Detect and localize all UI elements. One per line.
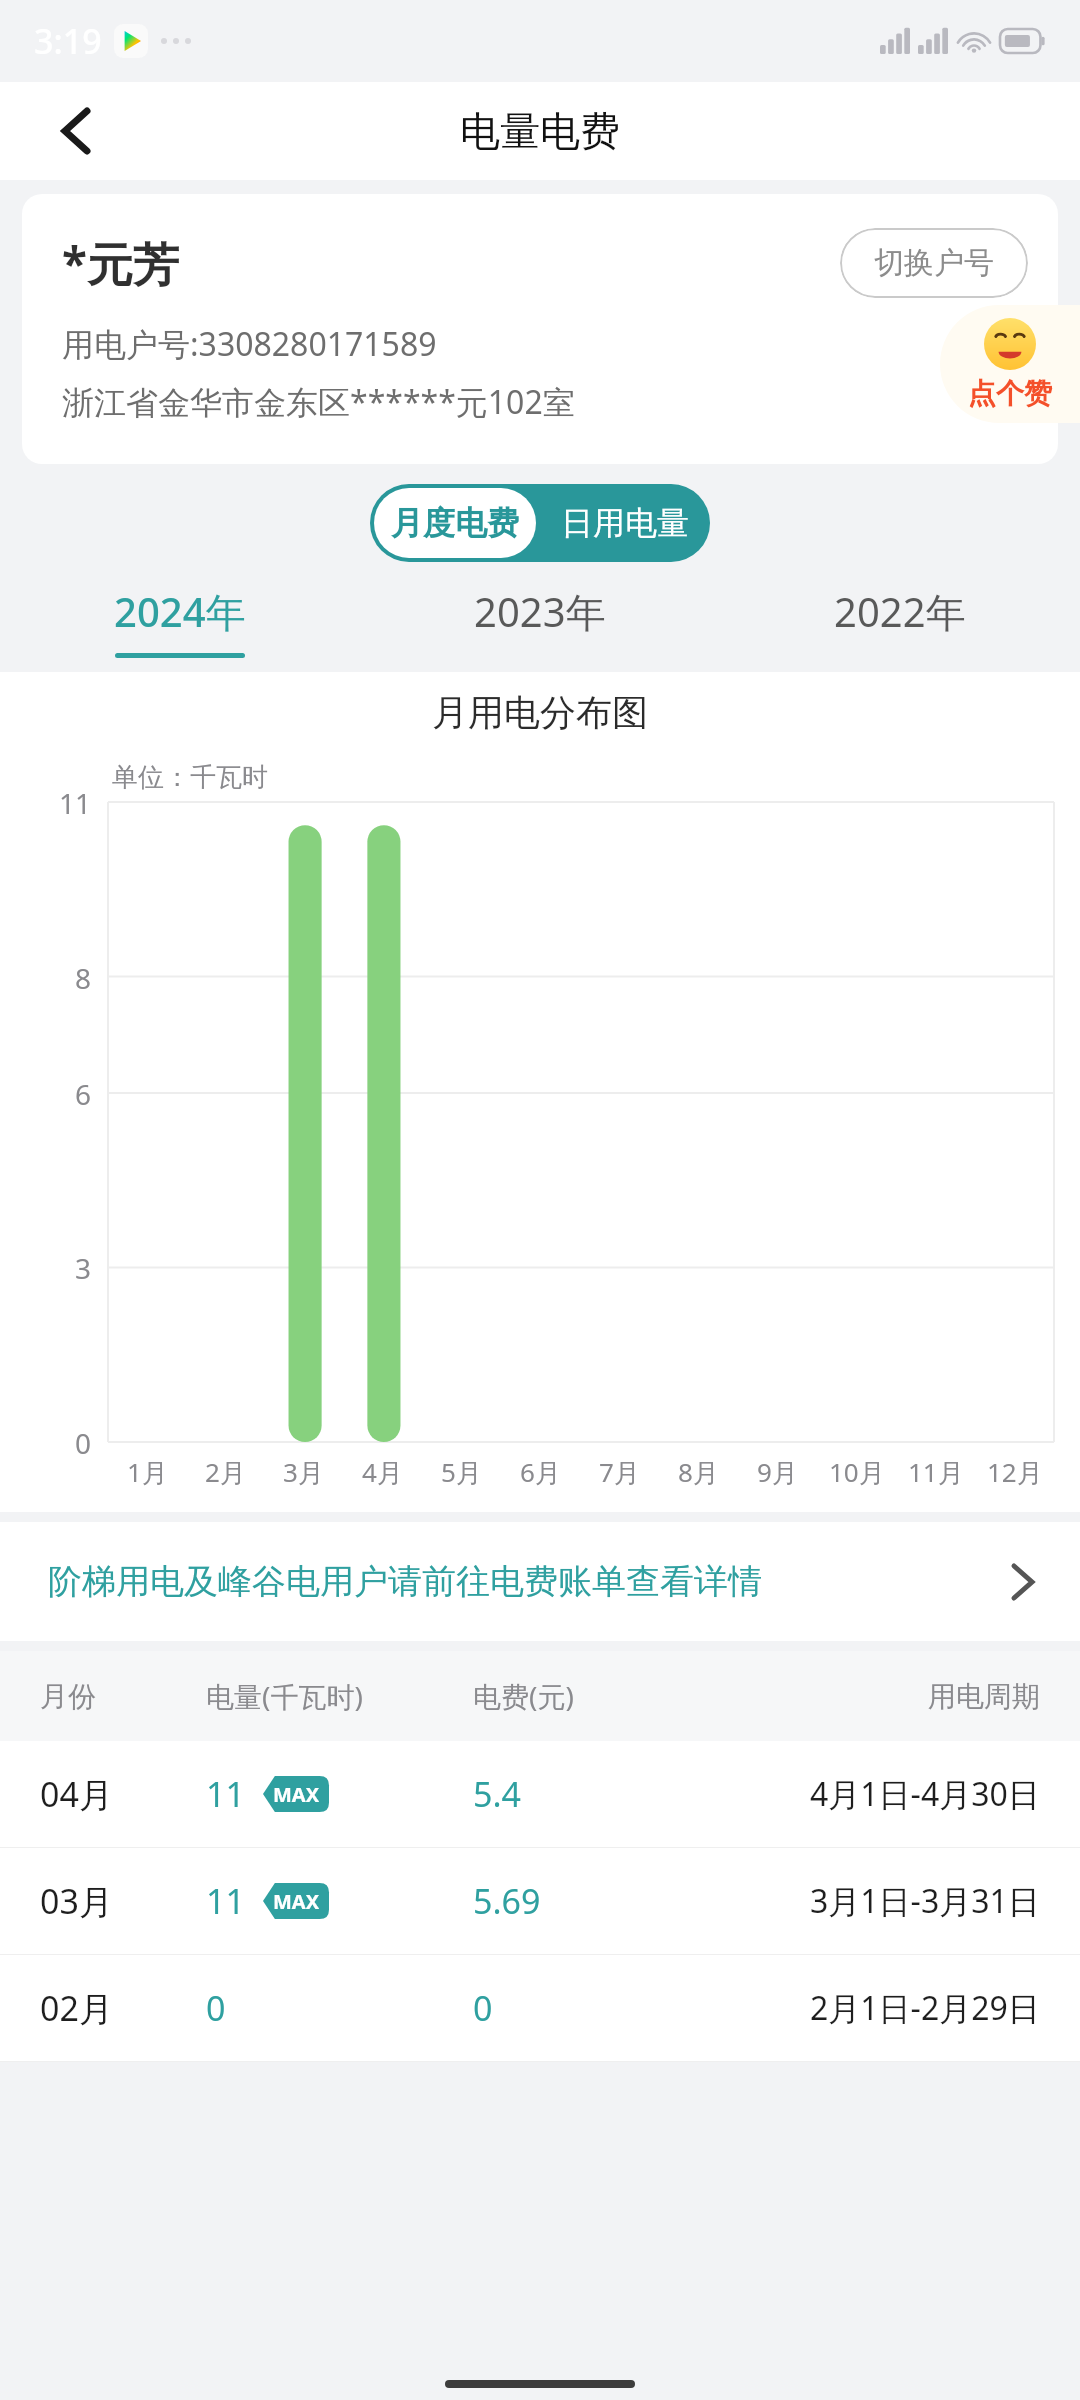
staticText: 3月: [283, 1454, 324, 1490]
staticText: 0: [206, 1985, 226, 2031]
staticText: 11: [59, 784, 92, 822]
staticText: 月度电费: [391, 503, 519, 543]
staticText: 0: [473, 1985, 493, 2031]
staticText: 5.69: [473, 1878, 541, 1924]
staticText: 04月: [40, 1771, 113, 1817]
staticText: 02月: [40, 1985, 113, 2031]
staticText: 2月: [205, 1454, 246, 1490]
staticText: 月份: [40, 1679, 96, 1714]
button[interactable]: 2023年: [360, 584, 720, 658]
staticText: 11: [206, 1771, 245, 1817]
button[interactable]: 阶梯用电及峰谷电用户请前往电费账单查看详情: [0, 1522, 1080, 1641]
staticText: 点个赞: [968, 376, 1052, 411]
button[interactable]: 返回: [42, 97, 110, 165]
staticText: 0: [75, 1424, 92, 1462]
staticText: 7月: [599, 1454, 640, 1490]
staticText: 用电户号:3308280171589: [62, 322, 437, 366]
button[interactable]: 03月: [0, 1848, 1080, 1954]
staticText: 12月: [987, 1454, 1043, 1490]
staticText: 4月1日-4月30日: [810, 1772, 1040, 1816]
staticText: 4月: [362, 1454, 403, 1490]
staticText: 日用电量: [561, 503, 689, 543]
staticText: 电费(元): [473, 1677, 574, 1715]
staticText: 单位：千瓦时: [112, 761, 268, 794]
button[interactable]: 2024年: [0, 584, 360, 658]
button[interactable]: 点个赞: [940, 305, 1080, 423]
staticText: 8月: [678, 1454, 719, 1490]
staticText: 5.4: [473, 1771, 522, 1817]
staticText: 9月: [757, 1454, 798, 1490]
staticText: 3: [75, 1249, 92, 1287]
button[interactable]: *元芳: [22, 194, 1058, 464]
staticText: 电量电费: [460, 106, 620, 156]
staticText: 03月: [40, 1878, 113, 1924]
button[interactable]: 月度电费: [374, 488, 536, 558]
staticText: *元芳: [62, 232, 179, 295]
button[interactable]: 02月: [0, 1955, 1080, 2061]
staticText: 2023年: [474, 584, 606, 639]
staticText: 1月: [127, 1454, 168, 1490]
staticText: 用电周期: [928, 1679, 1040, 1714]
staticText: 2月1日-2月29日: [810, 1986, 1040, 2030]
staticText: 电量(千瓦时): [206, 1677, 363, 1715]
button[interactable]: 2022年: [720, 584, 1080, 658]
staticText: 2022年: [834, 584, 966, 639]
staticText: 11月: [908, 1454, 964, 1490]
staticText: 10月: [829, 1454, 885, 1490]
staticText: 2024年: [114, 584, 246, 639]
staticText: 月用电分布图: [432, 690, 648, 735]
staticText: 阶梯用电及峰谷电用户请前往电费账单查看详情: [48, 1560, 762, 1603]
staticText: 浙江省金华市金东区******元102室: [62, 380, 575, 424]
staticText: 5月: [441, 1454, 482, 1490]
staticText: 8: [75, 959, 92, 997]
staticText: 11: [206, 1878, 245, 1924]
button[interactable]: 切换户号: [840, 228, 1028, 298]
staticText: MAX: [273, 1781, 320, 1808]
button[interactable]: 日用电量: [540, 484, 710, 562]
staticText: 切换户号: [874, 244, 994, 282]
staticText: MAX: [273, 1888, 320, 1915]
staticText: 3月1日-3月31日: [810, 1879, 1040, 1923]
staticText: 6: [75, 1075, 92, 1113]
button[interactable]: 04月: [0, 1741, 1080, 1847]
staticText: 6月: [520, 1454, 561, 1490]
staticText: 3:19: [34, 18, 102, 64]
